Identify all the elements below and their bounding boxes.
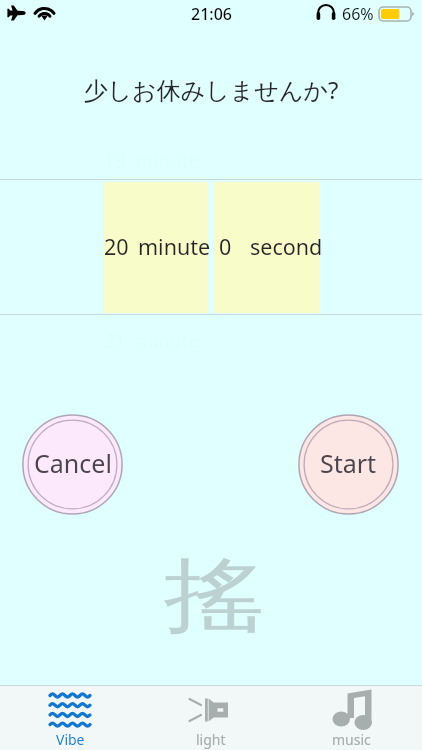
staticText: light — [196, 730, 226, 749]
staticText: 少しお休みしませんか? — [0, 73, 422, 106]
staticText: second — [250, 232, 323, 261]
other: Music — [326, 691, 378, 729]
other: Vibration — [44, 691, 96, 729]
button[interactable]: Cancel — [22, 414, 123, 515]
button[interactable]: Vibration — [0, 686, 140, 750]
other: Flashlight — [185, 691, 237, 729]
staticText: 21:06 — [191, 3, 232, 25]
staticText: 20 — [104, 232, 129, 261]
staticText: Vibe — [56, 730, 85, 749]
staticText: minute — [138, 232, 211, 261]
staticText: Start — [320, 446, 377, 480]
button[interactable]: Start — [298, 414, 399, 515]
button[interactable]: Music — [281, 686, 422, 750]
staticText: music — [332, 730, 371, 749]
staticText: Cancel — [34, 446, 112, 480]
staticText: 0 — [219, 232, 232, 261]
button[interactable]: Flashlight — [140, 686, 281, 750]
staticText: 66% — [342, 3, 374, 25]
staticText: 搖 — [164, 546, 264, 647]
